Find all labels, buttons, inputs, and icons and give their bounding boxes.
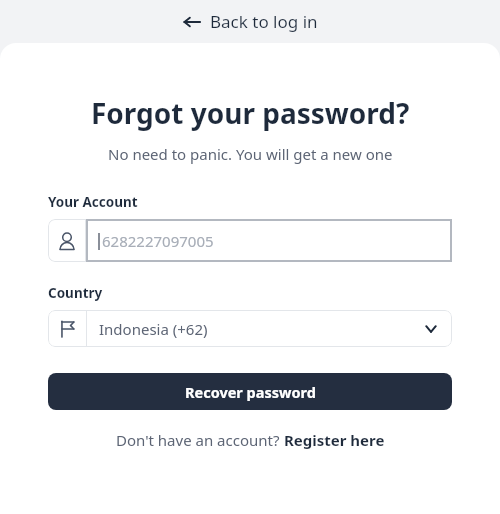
staticText: Forgot your password? — [91, 94, 410, 132]
staticText: Your Account — [48, 193, 138, 211]
other: Account — [57, 231, 77, 251]
staticText: 6282227097005 — [102, 231, 214, 251]
button[interactable]: 6282227097005 — [86, 219, 452, 262]
staticText: No need to panic. You will get a new one — [108, 144, 393, 164]
other: Country flag — [58, 320, 76, 338]
staticText: Don't have an account? — [116, 430, 284, 450]
staticText: Register here — [284, 430, 385, 450]
staticText: Indonesia (+62) — [99, 319, 208, 339]
staticText: Country — [48, 284, 103, 302]
button[interactable]: Recover password — [48, 373, 452, 410]
staticText: Recover password — [185, 382, 316, 402]
staticText: Back to log in — [210, 10, 318, 33]
button[interactable]: Country flag — [48, 310, 452, 347]
button[interactable]: Register here — [284, 430, 385, 450]
button[interactable]: Back to log in — [175, 6, 326, 37]
